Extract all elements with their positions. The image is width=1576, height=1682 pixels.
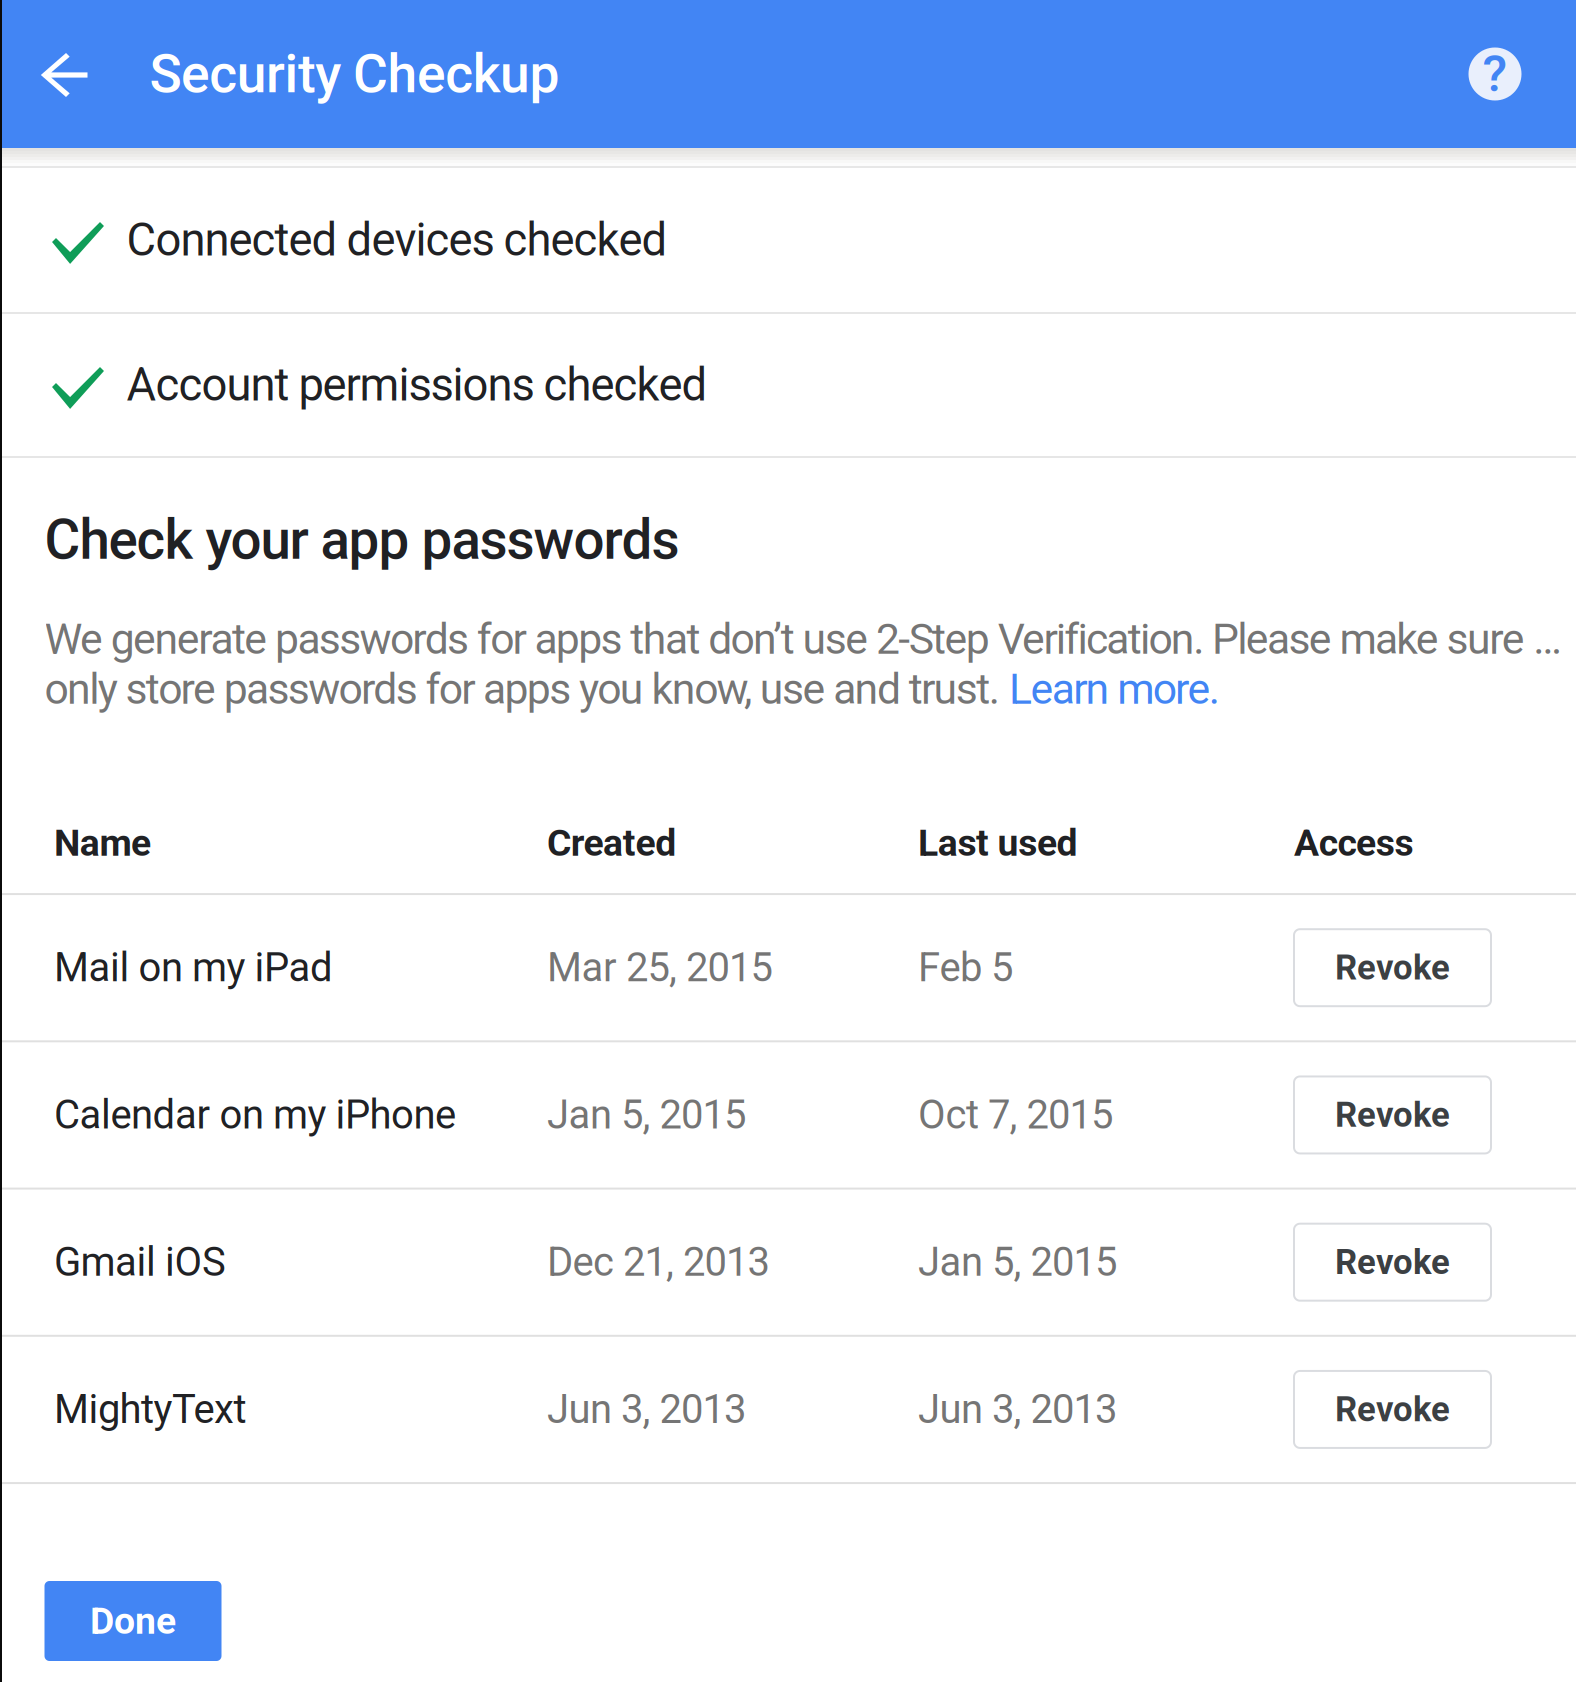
staticText: Learn more.	[1009, 664, 1220, 714]
staticText: Last used	[918, 821, 1078, 865]
button[interactable]: Revoke	[1294, 1224, 1491, 1301]
staticText: Oct 7, 2015	[918, 1091, 1113, 1138]
staticText: Revoke	[1335, 1242, 1450, 1282]
staticText: Done	[90, 1599, 176, 1643]
staticText: Gmail iOS	[54, 1239, 226, 1286]
button[interactable]: Revoke	[1294, 1076, 1491, 1153]
staticText: Revoke	[1335, 1095, 1450, 1135]
staticText: Mar 25, 2015	[547, 944, 772, 991]
staticText: only store passwords for apps you know, …	[44, 664, 1009, 714]
staticText: Mail on my iPad	[54, 944, 333, 991]
staticText: Jan 5, 2015	[547, 1091, 746, 1138]
button[interactable]: Done	[44, 1581, 221, 1661]
staticText: Jun 3, 2013	[547, 1386, 746, 1433]
staticText: Account permissions checked	[126, 358, 707, 411]
staticText: Security Checkup	[149, 43, 559, 105]
staticText: Created	[547, 821, 676, 865]
staticText: Revoke	[1335, 947, 1450, 988]
button[interactable]: Revoke	[1294, 1371, 1491, 1448]
staticText: Feb 5	[918, 944, 1013, 991]
staticText: MightyText	[54, 1386, 246, 1433]
staticText: Name	[54, 821, 151, 865]
staticText: Jan 5, 2015	[918, 1239, 1117, 1286]
staticText: We generate passwords for apps that don’…	[44, 614, 1576, 664]
button[interactable]: Learn more.	[1009, 664, 1220, 714]
staticText: Access	[1294, 821, 1413, 865]
staticText: Jun 3, 2013	[918, 1386, 1117, 1433]
button[interactable]: Revoke	[1294, 929, 1491, 1006]
staticText: Check your app passwords	[44, 508, 679, 572]
button[interactable]: Help	[1468, 0, 1576, 148]
staticText: Revoke	[1335, 1389, 1450, 1430]
staticText: Connected devices checked	[126, 213, 667, 266]
button[interactable]: Back	[0, 0, 121, 148]
staticText: ?	[1482, 44, 1507, 104]
staticText: Dec 21, 2013	[547, 1239, 769, 1286]
staticText: Calendar on my iPhone	[54, 1091, 456, 1138]
